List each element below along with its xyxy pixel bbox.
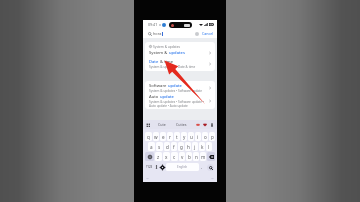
button[interactable]: Software [145, 82, 215, 93]
staticText: x [165, 154, 168, 160]
staticText: System & updates • Software update [149, 89, 202, 93]
button[interactable]: Voice input [153, 162, 159, 172]
button[interactable]: m [200, 152, 206, 161]
staticText: Cuties [176, 122, 187, 127]
staticText: System & [149, 50, 169, 56]
staticText: m [201, 154, 206, 160]
staticText: n [195, 154, 198, 160]
staticText: s [158, 144, 161, 150]
staticText: c [173, 154, 176, 160]
button[interactable]: e [160, 132, 166, 141]
button[interactable]: Emoji [159, 162, 166, 172]
button[interactable]: b [186, 152, 192, 161]
button[interactable]: j [192, 142, 198, 151]
staticText: g [180, 144, 183, 150]
button[interactable]: l [206, 142, 212, 151]
button[interactable]: English [166, 163, 199, 171]
staticText: 09:41 [148, 22, 158, 27]
button[interactable]: System & [145, 49, 215, 56]
button[interactable]: p [209, 132, 215, 141]
staticText: Cancel [202, 31, 214, 36]
button[interactable]: Date [145, 58, 215, 69]
button[interactable]: Cancel [202, 31, 214, 36]
button[interactable]: v [179, 152, 185, 161]
button[interactable]: k [199, 142, 205, 151]
staticText: q [147, 134, 150, 140]
staticText: English [177, 165, 188, 169]
button[interactable]: z [155, 152, 162, 161]
button[interactable]: c [171, 152, 178, 161]
staticText: Cute [158, 122, 166, 127]
staticText: b [188, 154, 191, 160]
button[interactable]: o [202, 132, 208, 141]
staticText: System & updates • Software update • Aut… [149, 100, 204, 108]
button[interactable]: Heart emoji [203, 123, 207, 127]
staticText: i [197, 134, 199, 140]
staticText: o [204, 134, 207, 140]
button[interactable]: d [164, 142, 170, 151]
button[interactable]: Clear search [195, 32, 199, 36]
button[interactable]: Keyboard menu [146, 123, 150, 127]
staticText: h [187, 144, 190, 150]
button[interactable]: Period [199, 162, 205, 172]
button[interactable]: Cuties [176, 122, 187, 127]
staticText: Software [149, 83, 168, 89]
button[interactable]: Shift [145, 152, 154, 161]
staticText: hora [153, 31, 162, 36]
button[interactable]: Auto [145, 94, 215, 108]
staticText: update [160, 94, 174, 100]
button[interactable]: w [153, 132, 159, 141]
button[interactable]: f [171, 142, 177, 151]
button[interactable]: s [156, 142, 163, 151]
staticText: e [162, 134, 165, 140]
button[interactable]: h [185, 142, 191, 151]
button[interactable]: g [178, 142, 184, 151]
button[interactable]: Search [205, 162, 215, 172]
button[interactable]: u [188, 132, 194, 141]
button[interactable]: Kiss emoji [196, 123, 200, 127]
button[interactable]: Backspace [207, 152, 215, 161]
staticText: update [168, 83, 182, 89]
staticText: y [183, 134, 186, 140]
staticText: updates [169, 50, 185, 56]
button[interactable]: q [145, 132, 152, 141]
button[interactable]: a [148, 142, 155, 151]
staticText: ?123 [146, 165, 153, 169]
staticText: p [211, 134, 214, 140]
staticText: System & updates • Date & time [149, 65, 196, 69]
staticText: v [181, 154, 184, 160]
button[interactable]: Symbols [145, 162, 153, 172]
staticText: l [208, 144, 210, 150]
staticText: k [201, 144, 204, 150]
button[interactable]: r [167, 132, 173, 141]
button[interactable]: y [181, 132, 187, 141]
staticText: r [169, 134, 171, 140]
staticText: a [150, 144, 153, 150]
staticText: f [173, 144, 175, 150]
staticText: Date [149, 59, 159, 65]
button[interactable]: Cute [158, 122, 166, 127]
staticText: w [154, 134, 158, 140]
staticText: z [157, 154, 160, 160]
staticText: d [166, 144, 169, 150]
staticText: . [201, 164, 203, 170]
staticText: u [190, 134, 193, 140]
button[interactable]: t [174, 132, 180, 141]
button[interactable]: n [193, 152, 199, 161]
button[interactable]: i [195, 132, 201, 141]
staticText: & time [159, 59, 174, 65]
staticText: t [176, 134, 178, 140]
button[interactable]: Sticker [210, 123, 214, 127]
button[interactable]: x [163, 152, 170, 161]
staticText: Auto [149, 94, 160, 100]
staticText: j [194, 144, 196, 150]
staticText: System & updates [153, 45, 180, 49]
